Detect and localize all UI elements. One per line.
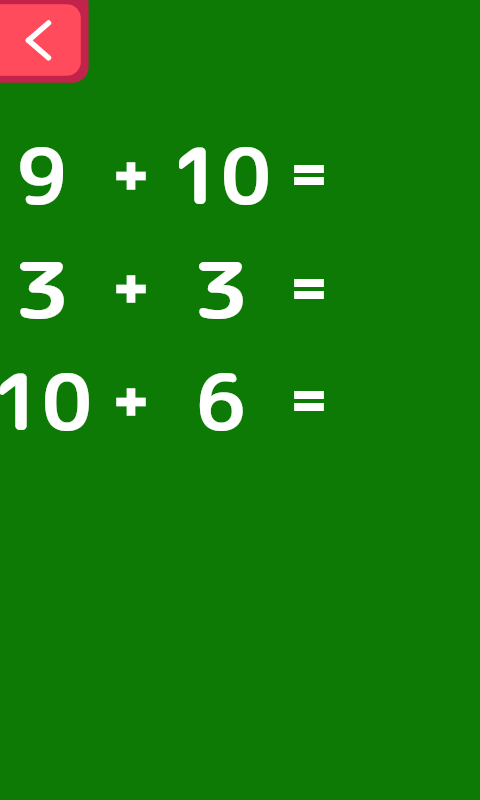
button[interactable]: Back (0, 0, 89, 83)
staticText: 3 (13, 234, 71, 343)
staticText: 10 (0, 346, 92, 455)
staticText: 6 (196, 346, 246, 455)
staticText: 10 (171, 120, 271, 229)
staticText: 3 (192, 234, 250, 343)
staticText: 9 (17, 120, 67, 229)
